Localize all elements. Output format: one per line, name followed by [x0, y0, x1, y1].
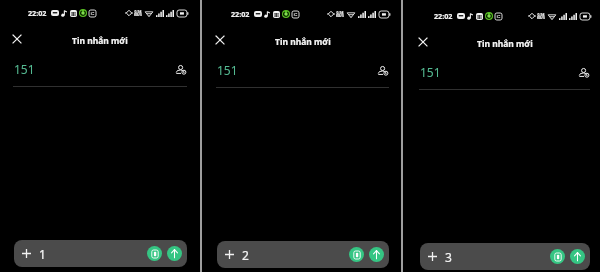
staticText: Tin nhắn mới: [477, 38, 533, 50]
button[interactable]: Send: [167, 246, 182, 261]
button[interactable]: Close: [414, 33, 432, 51]
button[interactable]: Close: [8, 30, 26, 48]
button[interactable]: Send: [570, 249, 585, 264]
button[interactable]: Add contact: [175, 64, 186, 75]
staticText: 22:02: [434, 11, 453, 21]
staticText: 1: [39, 246, 46, 262]
staticText: 2: [242, 247, 249, 263]
button[interactable]: SIM card: [349, 247, 364, 262]
staticText: 0.94 KB/S: [537, 12, 545, 20]
button[interactable]: Add recipient: [425, 249, 440, 264]
staticText: 0.94 KB/S: [134, 9, 142, 17]
staticText: 151: [14, 61, 35, 77]
button[interactable]: Close: [211, 31, 229, 49]
button[interactable]: Add recipient: [19, 246, 34, 261]
button[interactable]: Add contact: [578, 67, 589, 78]
button[interactable]: SIM card: [147, 246, 162, 261]
button[interactable]: Add contact: [377, 65, 388, 76]
button[interactable]: Add recipient: [222, 247, 237, 262]
staticText: 22:02: [231, 9, 250, 19]
button[interactable]: SIM card: [550, 249, 565, 264]
staticText: 0.94 KB/S: [336, 10, 344, 18]
staticText: 22:02: [28, 8, 47, 18]
staticText: 3: [445, 249, 452, 265]
staticText: Tin nhắn mới: [275, 36, 331, 48]
staticText: 151: [217, 62, 238, 78]
button[interactable]: Send: [369, 247, 384, 262]
staticText: Tin nhắn mới: [72, 35, 128, 47]
staticText: 151: [420, 64, 441, 80]
